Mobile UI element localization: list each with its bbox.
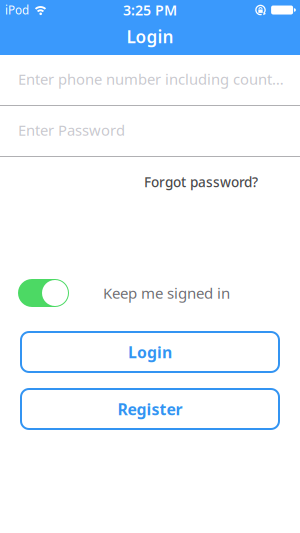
button[interactable]: Keep me signed in bbox=[18, 279, 69, 307]
staticText: Keep me signed in bbox=[103, 283, 230, 303]
staticText: Enter Password bbox=[18, 120, 125, 140]
staticText: Forgot password? bbox=[144, 173, 258, 191]
button[interactable]: Register bbox=[20, 388, 280, 430]
staticText: iPod bbox=[5, 2, 29, 18]
staticText: Login bbox=[126, 25, 173, 48]
button[interactable]: Login bbox=[20, 331, 280, 373]
button[interactable]: Forgot password? bbox=[144, 175, 258, 193]
staticText: 3:25 PM bbox=[123, 0, 177, 20]
textField[interactable]: Enter phone number including count… bbox=[0, 55, 300, 105]
staticText: Register bbox=[117, 398, 182, 420]
secureTextField[interactable]: Enter Password bbox=[0, 106, 300, 156]
staticText: Login bbox=[128, 341, 172, 363]
staticText: Enter phone number including count… bbox=[18, 69, 284, 89]
